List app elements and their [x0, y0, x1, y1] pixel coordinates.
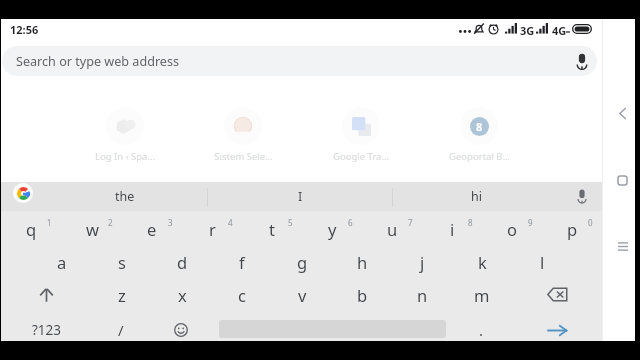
staticText: n [417, 284, 428, 306]
staticText: u [387, 218, 398, 240]
staticText: h [357, 251, 368, 273]
button[interactable]: Home [606, 164, 639, 197]
button[interactable]: w [62, 212, 122, 245]
button[interactable]: Back [606, 97, 639, 130]
button[interactable]: u [362, 212, 422, 245]
button[interactable]: 8 [420, 107, 538, 169]
button[interactable]: t [242, 212, 302, 245]
button[interactable]: Voice input [564, 182, 600, 211]
button[interactable]: n [392, 278, 452, 311]
staticText: . [479, 320, 484, 340]
staticText: l [540, 251, 545, 273]
button[interactable]: s [92, 245, 152, 278]
button[interactable]: hi [393, 182, 559, 211]
button[interactable]: . [452, 315, 511, 345]
staticText: 0 [588, 217, 593, 228]
staticText: y [328, 218, 337, 240]
button[interactable]: Sistem Sele… [184, 107, 302, 169]
staticText: q [26, 218, 37, 240]
staticText: x [178, 284, 187, 306]
button[interactable]: l [512, 245, 572, 278]
staticText: t [269, 218, 275, 240]
staticText: 3 [168, 217, 173, 228]
button[interactable]: b [332, 278, 392, 311]
button[interactable]: Voice search [570, 46, 594, 76]
button[interactable]: j [392, 245, 452, 278]
button[interactable]: e [122, 212, 182, 245]
staticText: hi [471, 188, 482, 205]
staticText: Geoportal B… [449, 150, 510, 163]
staticText: v [298, 284, 307, 306]
button[interactable]: Log In ‹ Spa… [66, 107, 184, 169]
staticText: I [298, 188, 303, 205]
button[interactable]: i [422, 212, 482, 245]
staticText: i [450, 218, 455, 240]
button[interactable]: d [152, 245, 212, 278]
button[interactable]: Shift [1, 278, 92, 311]
button[interactable]: r [182, 212, 242, 245]
staticText: 8 [476, 119, 483, 134]
staticText: 4G [552, 23, 567, 38]
staticText: Log In ‹ Spa… [95, 150, 155, 163]
button[interactable]: Backspace [512, 278, 602, 311]
button[interactable]: v [272, 278, 332, 311]
button[interactable]: I [208, 182, 393, 211]
staticText: p [567, 218, 578, 240]
button[interactable]: y [302, 212, 362, 245]
staticText: w [86, 218, 99, 240]
button[interactable]: q [1, 212, 62, 245]
button[interactable]: k [452, 245, 512, 278]
staticText: z [118, 284, 126, 306]
staticText: g [297, 251, 308, 273]
staticText: 4 [228, 217, 233, 228]
button[interactable]: / [93, 315, 148, 345]
button[interactable]: o [482, 212, 542, 245]
staticText: Search or type web address [16, 53, 180, 70]
button[interactable]: c [212, 278, 272, 311]
staticText: s [118, 251, 126, 273]
staticText: o [507, 218, 517, 240]
button[interactable]: the [42, 182, 208, 211]
button[interactable]: x [152, 278, 212, 311]
staticText: k [478, 251, 487, 273]
button[interactable]: Emoji [148, 315, 213, 345]
staticText: e [147, 218, 157, 240]
staticText: / [118, 320, 124, 340]
staticText: Sistem Sele… [214, 150, 273, 163]
staticText: ?123 [32, 321, 62, 339]
staticText: 3G [520, 23, 535, 38]
staticText: Google Tra… [333, 150, 389, 163]
staticText: 12:56 [10, 22, 39, 37]
staticText: a [57, 251, 67, 273]
button[interactable]: z [92, 278, 152, 311]
staticText: 1 [47, 217, 52, 228]
button[interactable]: ?123 [1, 315, 93, 345]
staticText: j [420, 251, 425, 273]
staticText: r [209, 218, 216, 240]
staticText: 9 [528, 217, 533, 228]
button[interactable]: p [542, 212, 602, 245]
staticText: f [239, 251, 245, 273]
staticText: d [177, 251, 188, 273]
button[interactable]: Recent apps [606, 230, 639, 263]
staticText: b [357, 284, 368, 306]
button[interactable]: Google Tra… [302, 107, 420, 169]
button[interactable]: Search or type web address [2, 46, 597, 76]
staticText: 7 [408, 217, 413, 228]
button[interactable]: m [452, 278, 512, 311]
button[interactable]: f [212, 245, 272, 278]
button[interactable]: h [332, 245, 392, 278]
staticText: 6 [348, 217, 353, 228]
staticText: c [238, 284, 246, 306]
button[interactable]: Enter [511, 315, 603, 345]
staticText: 5 [288, 217, 293, 228]
staticText: the [115, 188, 135, 205]
staticText: 8 [468, 217, 473, 228]
button[interactable]: a [32, 245, 92, 278]
button[interactable]: g [272, 245, 332, 278]
staticText: 2 [108, 217, 113, 228]
staticText: m [474, 284, 490, 306]
